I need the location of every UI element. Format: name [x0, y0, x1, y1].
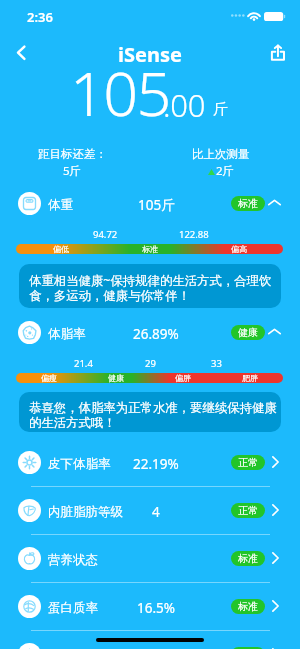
button[interactable]: 内脏脂肪等级 — [0, 486, 300, 534]
staticText: 体重相当健康~保持规律的生活方式，合理饮 食，多运动，健康与你常伴！ — [29, 272, 279, 303]
staticText: 健康 — [238, 326, 258, 339]
staticText: 健康 — [108, 373, 124, 383]
staticText: 肥胖 — [242, 373, 258, 383]
staticText: 5斤 — [63, 163, 82, 179]
staticText: 标准 — [238, 197, 258, 210]
staticText: 斤 — [213, 100, 228, 119]
staticText: .00 — [163, 84, 206, 126]
staticText: 16.5% — [137, 599, 176, 617]
staticText: 偏高 — [231, 244, 247, 254]
staticText: 比上次测量 — [192, 147, 250, 161]
button[interactable]: Share — [266, 40, 290, 62]
button[interactable]: 蛋白质率 — [0, 582, 300, 630]
staticText: 距目标还差： — [38, 147, 107, 161]
staticText: 标准 — [142, 244, 158, 254]
staticText: 2斤 — [216, 163, 235, 179]
staticText: 122.88 — [179, 228, 209, 241]
staticText: 标准 — [238, 552, 258, 565]
staticText: 94.72 — [93, 228, 118, 241]
button[interactable]: Back — [5, 36, 38, 69]
staticText: 105斤 — [138, 196, 175, 214]
staticText: 26.89% — [133, 325, 179, 343]
staticText: 29 — [145, 357, 156, 370]
staticText: 2:36 — [27, 8, 53, 26]
button[interactable]: 体重 — [0, 188, 300, 218]
staticText: 偏瘦 — [41, 373, 57, 383]
staticText: 体脂率 — [48, 326, 86, 342]
staticText: 营养状态 — [48, 552, 98, 568]
staticText: iSense — [118, 41, 182, 68]
staticText: 22.19% — [133, 455, 179, 473]
staticText: 体重 — [48, 197, 73, 213]
staticText: 33 — [211, 357, 222, 370]
staticText: 正常 — [238, 456, 258, 469]
staticText: 105 — [70, 51, 170, 134]
staticText: 蛋白质率 — [48, 600, 98, 616]
button[interactable]: 体脂率 — [0, 317, 300, 347]
staticText: 标准 — [238, 600, 258, 613]
staticText: 皮下体脂率 — [48, 456, 111, 472]
staticText: 偏胖 — [175, 373, 191, 383]
staticText: 偏低 — [53, 244, 69, 254]
staticText: 内脏脂肪等级 — [48, 504, 123, 520]
button[interactable]: 营养状态 — [0, 534, 300, 582]
staticText: 21.4 — [74, 357, 93, 370]
staticText: 4 — [152, 503, 160, 521]
button[interactable]: 水分率 — [0, 630, 300, 649]
staticText: 恭喜您，体脂率为正常水准，要继续保持健康 的生活方式哦！ — [29, 400, 279, 430]
staticText: 正常 — [238, 504, 258, 517]
button[interactable]: 皮下体脂率 — [0, 438, 300, 486]
